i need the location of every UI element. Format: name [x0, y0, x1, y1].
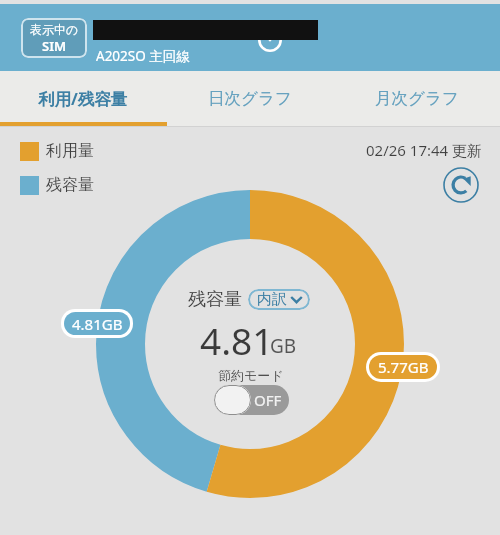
staticText: OFF — [254, 390, 282, 410]
staticText: 内訳 — [257, 290, 287, 309]
staticText: 02/26 17:44 更新 — [366, 140, 483, 160]
staticText: 4.81GB — [72, 314, 123, 334]
button[interactable]: 月次グラフ — [333, 71, 500, 126]
staticText: 利用量 — [46, 141, 94, 161]
staticText: A202SO 主回線 — [96, 47, 190, 65]
staticText: 利用/残容量 — [38, 87, 128, 110]
button[interactable]: 日次グラフ — [166, 71, 333, 126]
staticText: 表示中の — [30, 22, 79, 37]
staticText: 日次グラフ — [208, 88, 292, 109]
button[interactable]: 内訳 — [248, 289, 310, 310]
button[interactable]: 利用/残容量 — [0, 71, 166, 126]
button[interactable]: Refresh — [443, 167, 479, 203]
staticText: 残容量 — [46, 175, 94, 195]
staticText: 月次グラフ — [375, 88, 459, 109]
staticText: 節約モード — [218, 367, 284, 383]
button[interactable]: OFF — [214, 385, 289, 415]
staticText: 残容量 — [188, 288, 242, 311]
staticText: 5.77GB — [378, 357, 429, 377]
button[interactable]: 表示中の — [21, 18, 87, 58]
staticText: 4.81 — [200, 315, 274, 365]
other: Info — [258, 28, 282, 52]
staticText: SIM — [42, 37, 67, 55]
staticText: GB — [270, 333, 297, 359]
